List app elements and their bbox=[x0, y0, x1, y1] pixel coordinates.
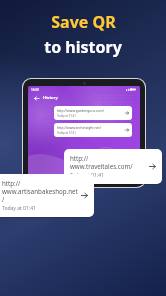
other: Open link bbox=[125, 111, 129, 115]
staticText: Today at 01:41 bbox=[57, 114, 76, 118]
staticText: Today at 01:41 bbox=[57, 131, 76, 135]
button[interactable]: http://www.artisanbakeshop.net/ bbox=[0, 174, 94, 217]
button[interactable]: http://www.techinsight.net/ bbox=[54, 123, 132, 137]
staticText: http://www.gardenguru.com/ bbox=[57, 108, 104, 113]
staticText: to history bbox=[44, 36, 122, 58]
other: Open link bbox=[125, 128, 129, 132]
staticText: Today at 01:41 bbox=[70, 172, 104, 179]
button[interactable]: http://www.gardenguru.com/ bbox=[54, 106, 132, 120]
staticText: http://www.techinsight.net/ bbox=[57, 125, 101, 130]
button[interactable]: Back bbox=[33, 95, 40, 102]
other: Open link bbox=[149, 163, 156, 170]
staticText: Today at 01:41 bbox=[2, 205, 36, 212]
staticText: History bbox=[43, 95, 58, 101]
staticText: Save QR bbox=[51, 11, 116, 33]
staticText: http://www.traveltales.com/ bbox=[70, 154, 146, 170]
staticText: 16:30 bbox=[31, 88, 39, 92]
other: Open link bbox=[81, 192, 88, 199]
button[interactable]: http://www.traveltales.com/ bbox=[64, 149, 162, 184]
staticText: http://www.artisanbakeshop.net/ bbox=[2, 179, 78, 203]
